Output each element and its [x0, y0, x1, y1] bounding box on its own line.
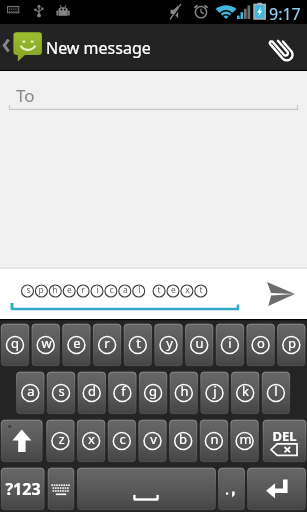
button[interactable]: Attach: [257, 24, 307, 71]
staticText: q: [11, 334, 19, 352]
button[interactable]: f: [109, 372, 137, 414]
staticText: r: [104, 334, 110, 352]
staticText: 9:17: [269, 3, 301, 25]
button[interactable]: Shift: [1, 420, 42, 462]
staticText: f: [121, 382, 126, 400]
staticText: i: [228, 334, 232, 352]
staticText: d: [88, 382, 96, 400]
staticText: s: [26, 284, 31, 296]
button[interactable]: b: [169, 420, 197, 462]
button[interactable]: t: [124, 324, 152, 366]
staticText: DEL: [272, 427, 297, 445]
staticText: e: [171, 284, 176, 296]
staticText: o: [257, 334, 265, 352]
button[interactable]: i: [216, 324, 244, 366]
staticText: n: [210, 430, 219, 448]
staticText: New message: [46, 37, 151, 59]
button[interactable]: l: [262, 372, 290, 414]
staticText: y: [166, 334, 173, 352]
button[interactable]: e: [63, 324, 91, 366]
staticText: j: [213, 382, 217, 400]
staticText: c: [119, 430, 126, 448]
staticText: v: [150, 430, 157, 448]
button[interactable]: m: [231, 420, 259, 462]
button[interactable]: Comma: [219, 468, 245, 510]
staticText: u: [195, 334, 204, 352]
staticText: ?123: [5, 478, 41, 500]
staticText: c: [109, 284, 114, 296]
staticText: a: [123, 284, 128, 296]
button[interactable]: u: [185, 324, 213, 366]
button[interactable]: h: [170, 372, 198, 414]
staticText: h: [52, 284, 58, 296]
staticText: z: [58, 430, 65, 448]
button[interactable]: d: [78, 372, 106, 414]
button[interactable]: x: [77, 420, 105, 462]
button[interactable]: w: [32, 324, 60, 366]
staticText: h: [180, 382, 189, 400]
staticText: t: [157, 284, 161, 296]
staticText: x: [88, 430, 95, 448]
staticText: b: [179, 430, 187, 448]
staticText: l: [274, 382, 278, 400]
button[interactable]: Send: [255, 269, 307, 319]
button[interactable]: n: [200, 420, 228, 462]
staticText: x: [185, 284, 190, 296]
staticText: l: [138, 284, 141, 296]
button[interactable]: j: [201, 372, 229, 414]
button[interactable]: y: [155, 324, 183, 366]
button[interactable]: k: [231, 372, 259, 414]
staticText: e: [67, 284, 72, 296]
staticText: To: [16, 84, 35, 107]
staticText: r: [81, 284, 85, 296]
button[interactable]: p: [278, 324, 306, 366]
button[interactable]: New message: [0, 24, 151, 71]
button[interactable]: z: [47, 420, 75, 462]
button[interactable]: Enter: [248, 468, 306, 510]
staticText: m: [239, 430, 252, 448]
staticText: e: [73, 334, 81, 352]
button[interactable]: q: [1, 324, 29, 366]
staticText: t: [136, 334, 141, 352]
button[interactable]: c: [108, 420, 136, 462]
staticText: s: [58, 382, 65, 400]
button[interactable]: g: [139, 372, 167, 414]
button[interactable]: Switch keyboard: [48, 468, 74, 510]
staticText: p: [38, 284, 44, 296]
staticText: w: [41, 334, 52, 352]
button[interactable]: Symbols: [1, 468, 44, 510]
button[interactable]: r: [93, 324, 121, 366]
staticText: i: [96, 284, 99, 296]
button[interactable]: Space: [78, 468, 216, 510]
button[interactable]: o: [247, 324, 275, 366]
button[interactable]: Delete: [263, 420, 306, 462]
staticText: g: [149, 382, 157, 400]
button[interactable]: v: [139, 420, 167, 462]
staticText: t: [199, 284, 203, 296]
button[interactable]: s: [47, 372, 75, 414]
staticText: p: [288, 334, 296, 352]
staticText: a: [27, 382, 35, 400]
button[interactable]: a: [17, 372, 45, 414]
staticText: k: [242, 382, 249, 400]
